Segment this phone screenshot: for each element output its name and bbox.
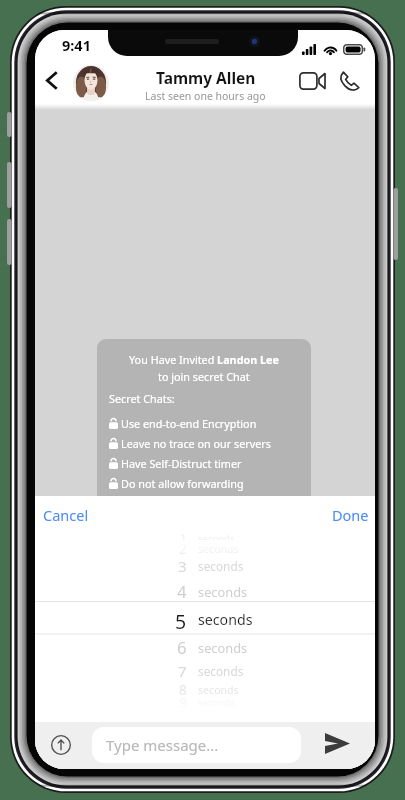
button[interactable]: Send: [313, 723, 361, 763]
staticText: seconds: [198, 583, 248, 600]
staticText: 4: [177, 580, 187, 602]
staticText: Last seen one hours ago: [145, 89, 266, 103]
staticText: Tammy Allen: [156, 67, 256, 88]
staticText: seconds: [198, 542, 239, 556]
button[interactable]: Cancel: [43, 496, 89, 540]
staticText: 6: [177, 636, 187, 658]
staticText: Do not allow forwarding: [121, 476, 244, 491]
staticText: Secret Chats:: [109, 391, 175, 406]
staticText: 9:41: [62, 35, 91, 55]
staticText: seconds: [198, 532, 235, 545]
button[interactable]: Video call: [291, 64, 333, 98]
staticText: 7: [178, 661, 187, 681]
staticText: Type message...: [106, 735, 219, 755]
staticText: 8: [179, 681, 187, 699]
staticText: Cancel: [43, 505, 89, 525]
staticText: Leave no trace on our servers: [121, 436, 271, 451]
staticText: seconds: [198, 610, 253, 629]
button[interactable]: Type message...: [92, 727, 301, 763]
staticText: 9: [180, 694, 187, 710]
staticText: to join secret Chat: [158, 369, 250, 384]
staticText: 5: [175, 608, 187, 630]
staticText: 3: [178, 556, 187, 576]
staticText: 2: [179, 540, 187, 558]
staticText: Use end-to-end Encryption: [121, 416, 257, 431]
staticText: Done: [332, 505, 369, 525]
staticText: You Have Invited Landon Lee: [129, 352, 279, 367]
staticText: seconds: [198, 558, 244, 574]
staticText: 1: [180, 530, 187, 546]
button[interactable]: Back: [37, 61, 67, 99]
button[interactable]: Done: [328, 496, 372, 540]
button[interactable]: Voice call: [331, 62, 369, 100]
staticText: seconds: [198, 639, 248, 656]
staticText: seconds: [198, 683, 239, 697]
button[interactable]: 1: [35, 540, 375, 722]
staticText: seconds: [198, 663, 244, 679]
staticText: Have Self-Distruct timer: [121, 456, 242, 471]
button[interactable]: Attach: [43, 725, 79, 765]
